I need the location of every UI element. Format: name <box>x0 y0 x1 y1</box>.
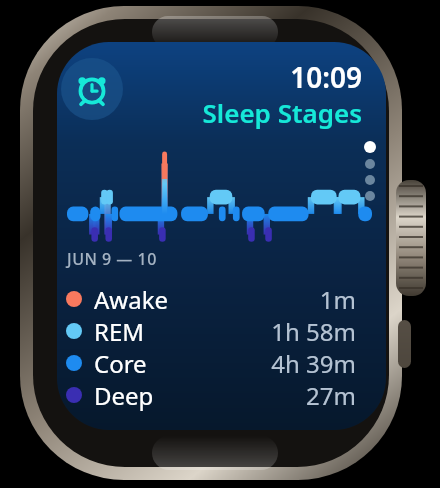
button[interactable]: Sleep Stages <box>152 95 362 130</box>
button[interactable]: Awake <box>57 283 386 315</box>
staticText: 27m <box>154 379 356 411</box>
staticText: 1m <box>169 283 356 315</box>
button[interactable]: Core <box>57 347 386 379</box>
button[interactable]: REM <box>57 315 386 347</box>
staticText: 10:09 <box>207 58 362 96</box>
button[interactable]: Alarm <box>61 58 123 120</box>
staticText: Core <box>94 347 147 379</box>
staticText: JUN 9 — 10 <box>67 248 157 270</box>
staticText: Deep <box>94 379 154 411</box>
staticText: 1h 58m <box>145 315 356 347</box>
staticText: 4h 39m <box>147 347 356 379</box>
button[interactable]: Deep <box>57 379 386 411</box>
staticText: REM <box>94 315 145 347</box>
staticText: Awake <box>94 283 169 315</box>
